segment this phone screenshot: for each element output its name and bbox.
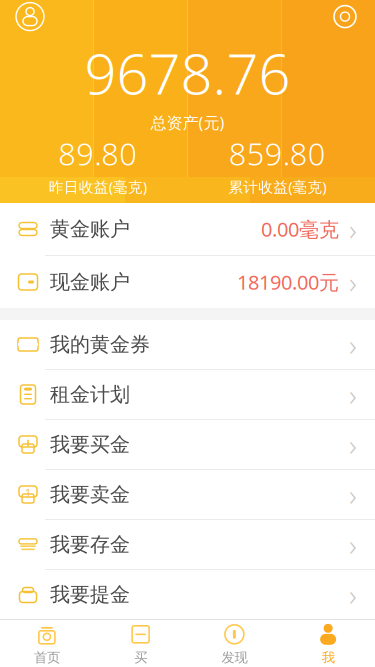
staticText: 租金计划 xyxy=(50,382,130,407)
staticText: 我要提金 xyxy=(50,582,130,607)
staticText: 黄金账户 xyxy=(50,217,130,241)
staticText: 我 xyxy=(322,649,335,666)
staticText: 9:41 AM xyxy=(147,0,215,1)
staticText: 89.80 xyxy=(58,133,137,174)
staticText: 发现 xyxy=(221,649,247,666)
staticText: 我的黄金券 xyxy=(50,332,150,357)
staticText: 859.80 xyxy=(229,133,326,174)
button[interactable]: 黄金账户 xyxy=(0,203,375,255)
staticText: 昨日收益(毫克) xyxy=(49,177,147,196)
button[interactable]: 买 xyxy=(94,620,188,667)
button[interactable]: Settings xyxy=(325,0,365,34)
staticText: 0.00毫克 xyxy=(261,216,339,242)
staticText: › xyxy=(349,525,357,564)
staticText: 18190.00元 xyxy=(237,269,339,295)
staticText: 总资产(元) xyxy=(150,112,224,133)
staticText: › xyxy=(349,325,357,364)
button[interactable]: 1 xyxy=(0,470,375,519)
staticText: 买 xyxy=(134,649,147,666)
button[interactable]: 我要提金 xyxy=(0,570,375,619)
staticText: 1 xyxy=(25,485,31,500)
staticText: 现金账户 xyxy=(50,270,130,294)
button[interactable]: 我要买金 xyxy=(0,420,375,469)
button[interactable]: 现金账户 xyxy=(0,256,375,308)
staticText: 首页 xyxy=(34,649,60,666)
staticText: › xyxy=(349,262,357,301)
staticText: › xyxy=(349,209,357,248)
button[interactable]: 我要存金 xyxy=(0,520,375,569)
staticText: › xyxy=(349,475,357,514)
staticText: 我要存金 xyxy=(50,532,130,557)
button[interactable]: 租金计划 xyxy=(0,370,375,419)
staticText: › xyxy=(349,425,357,464)
button[interactable]: 我的黄金券 xyxy=(0,320,375,369)
staticText: 我要买金 xyxy=(50,432,130,457)
staticText: › xyxy=(349,375,357,414)
button[interactable]: 我 xyxy=(281,620,375,667)
staticText: 累计收益(毫克) xyxy=(228,177,326,196)
staticText: 我要卖金 xyxy=(50,482,130,507)
staticText: 9678.76 xyxy=(84,36,290,110)
button[interactable]: 首页 xyxy=(0,620,94,667)
staticText: › xyxy=(349,575,357,614)
button[interactable]: Profile xyxy=(10,0,50,34)
button[interactable]: 发现 xyxy=(187,620,281,667)
